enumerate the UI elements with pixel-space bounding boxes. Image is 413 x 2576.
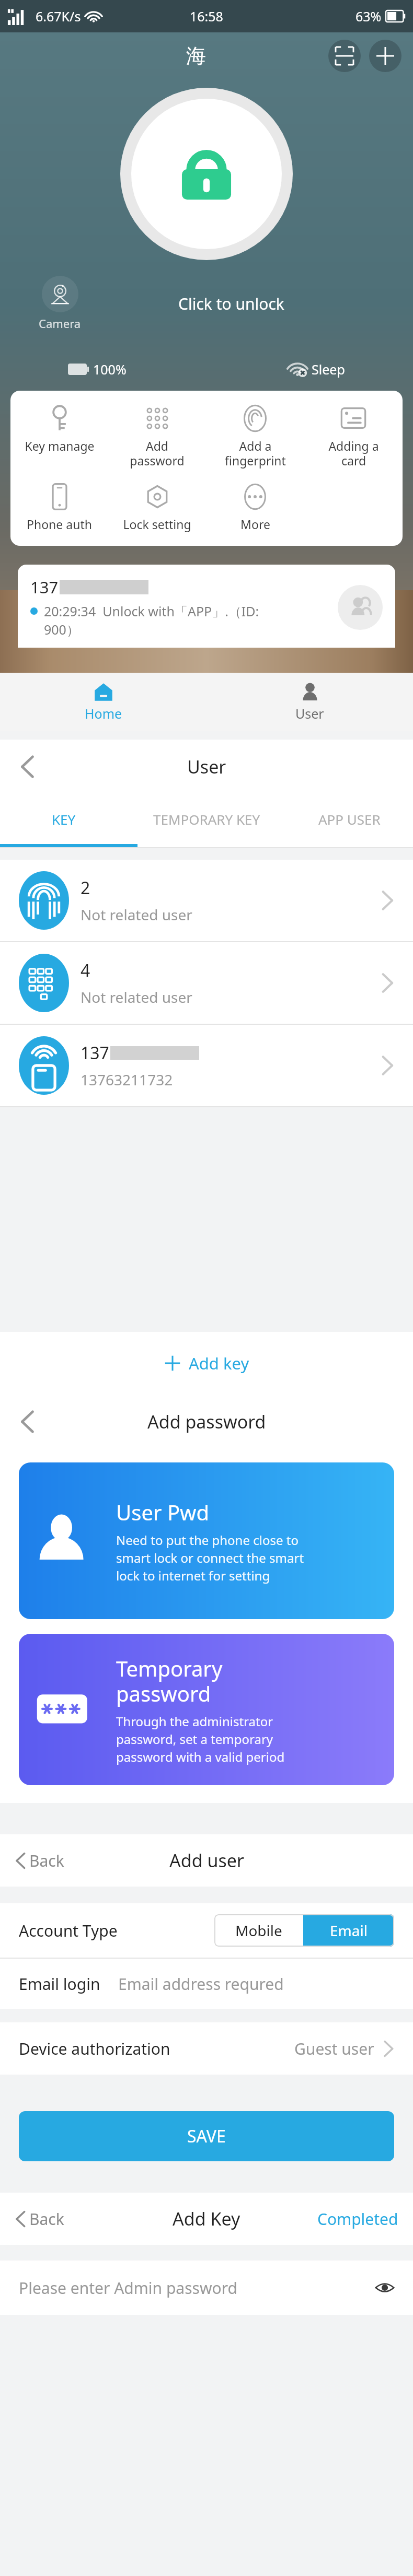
staticText: User — [187, 755, 226, 779]
staticText: 2 — [81, 876, 90, 899]
staticText: 6.67K/s — [36, 7, 81, 25]
staticText: Add password — [130, 438, 185, 469]
staticText: Click to unlock — [178, 293, 284, 314]
staticText: Back — [29, 2208, 64, 2230]
staticText: Email login — [19, 1973, 100, 1995]
button[interactable]: Completed — [314, 2205, 401, 2233]
button[interactable]: Email login — [0, 1959, 413, 2009]
button[interactable]: 2 — [0, 860, 413, 941]
button[interactable]: APP USER — [286, 794, 413, 844]
staticText: Add a fingerprint — [225, 438, 286, 469]
staticText: Email address requred — [118, 1973, 284, 1995]
button[interactable]: Key manage — [10, 402, 108, 456]
staticText: 4 — [81, 959, 90, 982]
button[interactable]: Add — [369, 40, 401, 72]
staticText: 100% — [93, 360, 127, 378]
staticText: Add Key — [173, 2207, 240, 2231]
staticText: TEMPORARY KEY — [153, 810, 260, 828]
staticText: Account Type — [19, 1920, 118, 1941]
button[interactable]: Home — [0, 673, 206, 731]
button[interactable]: 4 — [0, 942, 413, 1024]
button[interactable]: Back — [10, 1405, 44, 1438]
button[interactable]: Scan — [328, 40, 361, 72]
staticText: Temporary password — [116, 1654, 223, 1707]
staticText: User Pwd — [116, 1498, 210, 1526]
staticText: 海 — [186, 43, 206, 68]
staticText: 20:29:34 Unlock with「APP」.（ID: 900） — [44, 602, 259, 638]
button[interactable]: Back — [10, 1846, 68, 1876]
button[interactable]: Back — [10, 750, 44, 783]
button[interactable]: Lock setting — [108, 481, 206, 534]
staticText: Home — [85, 705, 122, 722]
staticText: Add key — [189, 1352, 249, 1374]
button[interactable]: Device authorization — [0, 2022, 413, 2075]
button[interactable]: Unlock — [120, 88, 293, 260]
button[interactable]: Please enter Admin password — [0, 2261, 413, 2315]
staticText: Guest user — [294, 2038, 374, 2059]
button[interactable]: Camera — [37, 274, 83, 333]
button[interactable]: Mobile — [214, 1914, 303, 1947]
staticText: Camera — [39, 315, 81, 331]
button[interactable]: Back — [10, 2204, 68, 2234]
staticText: 137 — [81, 1041, 109, 1064]
staticText: Through the administrator password, set … — [116, 1713, 285, 1765]
staticText: 137 — [30, 576, 59, 598]
button[interactable]: 137 — [18, 565, 395, 648]
button[interactable]: Add key — [0, 1332, 413, 1395]
button[interactable]: User Pwd — [19, 1462, 394, 1619]
staticText: 13763211732 — [81, 1070, 173, 1090]
staticText: Add user — [169, 1848, 244, 1872]
staticText: Sleep — [312, 360, 345, 378]
staticText: Mobile — [235, 1921, 282, 1940]
staticText: Email — [330, 1921, 368, 1940]
staticText: Device authorization — [19, 2038, 170, 2059]
button[interactable]: Phone auth — [10, 481, 108, 534]
button[interactable]: SAVE — [19, 2111, 394, 2161]
button[interactable]: KEY — [0, 794, 127, 844]
button[interactable]: Add password — [108, 402, 206, 471]
staticText: Key manage — [25, 438, 95, 454]
button[interactable]: Temporary password — [19, 1634, 394, 1785]
button[interactable]: 137 — [0, 1025, 413, 1106]
button[interactable]: Adding a card — [304, 402, 403, 471]
staticText: SAVE — [187, 2125, 226, 2148]
button[interactable]: TEMPORARY KEY — [127, 794, 286, 844]
staticText: Add password — [147, 1410, 266, 1434]
staticText: APP USER — [318, 810, 381, 828]
staticText: KEY — [52, 810, 76, 828]
staticText: 63% — [355, 7, 382, 25]
staticText: More — [240, 516, 270, 532]
staticText: Completed — [317, 2208, 398, 2230]
staticText: Not related user — [81, 905, 192, 924]
button[interactable]: User — [206, 673, 413, 731]
staticText: Need to put the phone close to smart loc… — [116, 1531, 304, 1584]
staticText: Adding a card — [328, 438, 379, 469]
other: Show password — [375, 2278, 394, 2297]
staticText: Back — [29, 1850, 64, 1871]
staticText: Not related user — [81, 987, 192, 1007]
staticText: Phone auth — [27, 516, 92, 532]
staticText: Please enter Admin password — [19, 2277, 237, 2299]
staticText: 16:58 — [190, 7, 223, 25]
button[interactable]: More — [206, 481, 304, 534]
button[interactable]: Add a fingerprint — [206, 402, 304, 471]
button[interactable]: Email — [303, 1914, 394, 1947]
staticText: Lock setting — [123, 516, 191, 532]
staticText: User — [295, 705, 324, 722]
